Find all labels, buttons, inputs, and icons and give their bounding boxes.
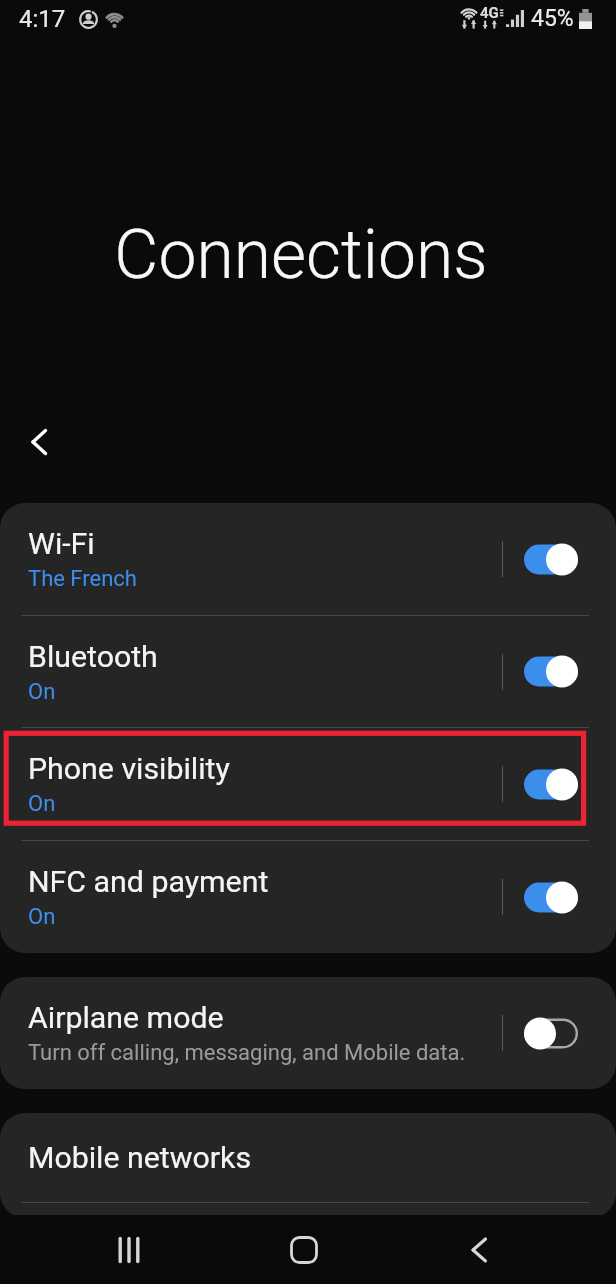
staticText: On [28, 904, 56, 930]
button[interactable]: Bluetooth [0, 616, 616, 727]
staticText: Phone visibility [28, 751, 230, 787]
staticText: NFC and payment [28, 864, 269, 900]
button[interactable]: Navigate up [7, 410, 71, 474]
staticText: On [28, 679, 56, 705]
button[interactable]: Toggle off [524, 1017, 578, 1050]
staticText: Airplane mode [28, 1000, 224, 1036]
staticText: The French [28, 566, 137, 592]
button[interactable]: Toggle on [524, 768, 578, 801]
button[interactable]: Wi-Fi [0, 503, 616, 615]
button[interactable]: Mobile networks [0, 1113, 616, 1202]
button[interactable]: Toggle on [524, 655, 578, 688]
staticText: Turn off calling, messaging, and Mobile … [28, 1040, 466, 1066]
staticText: Connections [0, 215, 609, 294]
button[interactable]: Home [270, 1216, 338, 1284]
button[interactable]: Airplane mode [0, 977, 616, 1089]
button[interactable]: Phone visibility [0, 728, 616, 840]
staticText: 45% [531, 5, 574, 32]
staticText: 4:17 [19, 5, 66, 33]
staticText: Wi-Fi [28, 526, 95, 562]
button[interactable]: Toggle on [524, 543, 578, 576]
button[interactable]: Back [444, 1216, 512, 1284]
button[interactable]: NFC and payment [0, 841, 616, 953]
button[interactable]: Toggle on [524, 881, 578, 914]
button[interactable]: Recent apps [95, 1216, 163, 1284]
staticText: On [28, 791, 56, 817]
staticText: Bluetooth [28, 639, 158, 675]
staticText: 4G [480, 4, 499, 22]
staticText: Mobile networks [28, 1140, 252, 1176]
